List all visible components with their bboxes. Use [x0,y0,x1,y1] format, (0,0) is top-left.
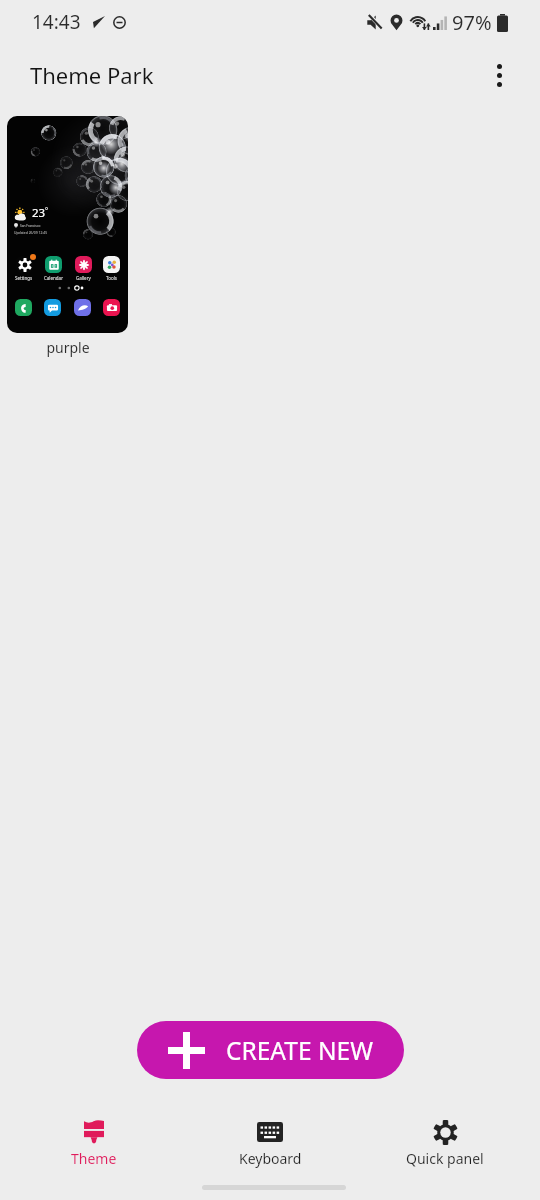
staticText: Theme Park [30,60,154,90]
staticText: Updated 26/09 12:45 [14,230,48,235]
staticText: 97% [452,9,492,36]
staticText: 23 [32,205,46,221]
staticText: Quick panel [406,1149,484,1168]
staticText: Theme [71,1149,117,1168]
staticText: ° [45,206,48,216]
staticText: Keyboard [239,1149,302,1168]
button[interactable]: Keyboard [182,1095,358,1176]
staticText: Settings [15,275,33,281]
staticText: Calendar [44,275,63,281]
staticText: Tools [106,275,117,281]
staticText: CREATE NEW [226,1034,373,1067]
button[interactable]: Theme [6,1095,182,1176]
staticText: 14:43 [32,9,81,35]
staticText: Gallery [76,275,91,281]
staticText: purple [46,338,90,357]
button[interactable]: 23 [7,116,128,357]
button[interactable]: Quick panel [357,1095,533,1176]
button[interactable]: CREATE NEW [137,1021,404,1079]
button[interactable]: More options [475,51,523,99]
staticText: San Francisco [20,224,41,228]
